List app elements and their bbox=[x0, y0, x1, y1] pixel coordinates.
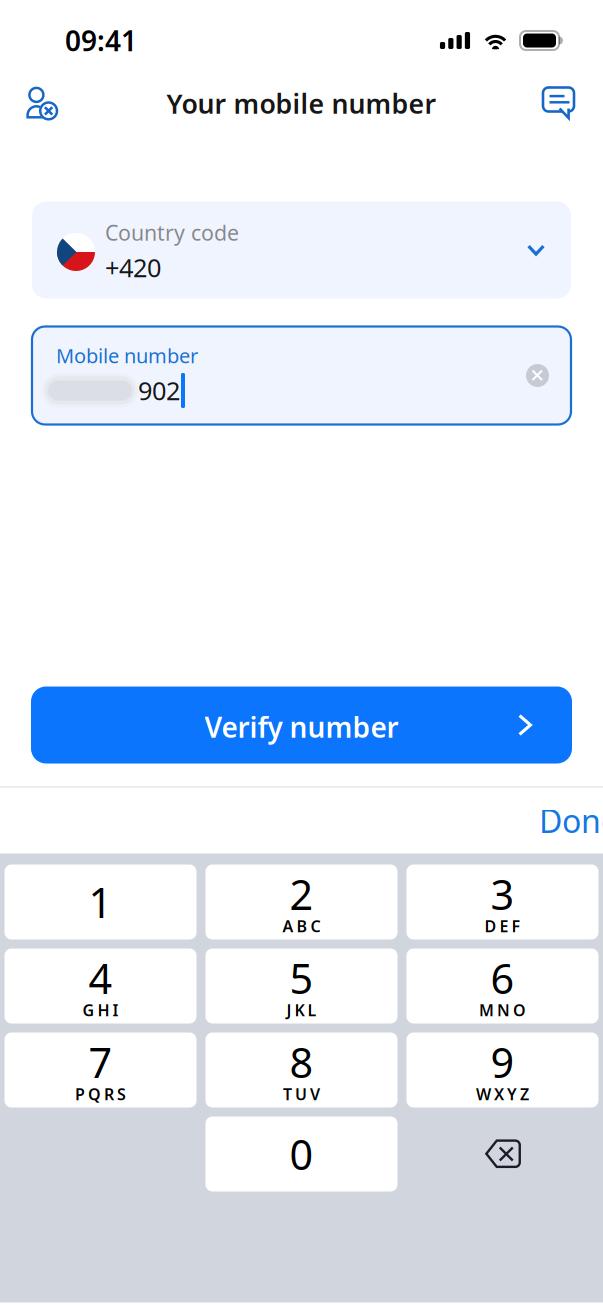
staticText: Verify number bbox=[204, 708, 398, 746]
staticText: 0 bbox=[289, 1127, 313, 1181]
staticText: 2 bbox=[289, 867, 313, 921]
staticText: P Q R S bbox=[75, 1083, 126, 1105]
staticText: 7 bbox=[88, 1035, 112, 1089]
staticText: A B C bbox=[282, 915, 320, 937]
button[interactable]: 8 bbox=[205, 1032, 397, 1107]
staticText: 9 bbox=[490, 1035, 514, 1089]
staticText: 5 bbox=[289, 951, 313, 1005]
staticText: G H I bbox=[82, 999, 118, 1021]
button[interactable]: 5 bbox=[205, 948, 397, 1023]
button[interactable]: Delete bbox=[406, 1116, 599, 1191]
staticText: D E F bbox=[484, 915, 520, 937]
button[interactable]: 9 bbox=[406, 1032, 598, 1107]
staticText: Country code bbox=[105, 218, 239, 247]
button[interactable]: Done bbox=[523, 798, 603, 842]
button[interactable]: Clear text bbox=[517, 355, 558, 396]
button[interactable]: 6 bbox=[406, 948, 598, 1023]
button[interactable]: Chat support bbox=[529, 79, 589, 127]
button[interactable]: 0 bbox=[205, 1116, 397, 1191]
button[interactable]: 2 bbox=[205, 864, 397, 939]
staticText: Done bbox=[539, 799, 603, 842]
staticText: M N O bbox=[479, 999, 526, 1021]
staticText: T U V bbox=[283, 1083, 320, 1105]
button[interactable]: Country code bbox=[32, 201, 571, 298]
staticText: 09:41 bbox=[65, 22, 137, 59]
button[interactable]: Verify number bbox=[31, 686, 572, 763]
staticText: J K L bbox=[286, 999, 316, 1021]
staticText: Your mobile number bbox=[166, 86, 436, 121]
staticText: W X Y Z bbox=[476, 1083, 529, 1105]
button[interactable]: 3 bbox=[406, 864, 598, 939]
button[interactable]: Remove contact bbox=[12, 78, 74, 128]
button[interactable]: 7 bbox=[4, 1032, 196, 1107]
staticText: 6 bbox=[490, 951, 514, 1005]
staticText: 902 bbox=[138, 374, 180, 407]
staticText: 4 bbox=[88, 951, 112, 1005]
staticText: 1 bbox=[88, 875, 112, 929]
staticText: +420 bbox=[105, 251, 161, 284]
staticText: 8 bbox=[289, 1035, 313, 1089]
staticText: 3 bbox=[490, 867, 514, 921]
staticText: Mobile number bbox=[56, 342, 198, 369]
button[interactable]: 4 bbox=[4, 948, 196, 1023]
button[interactable]: 1 bbox=[4, 864, 196, 939]
